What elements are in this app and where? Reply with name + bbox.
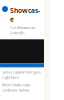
staticText: Certificates on LinkedIn [10, 25, 35, 35]
staticText: Showcase [10, 6, 40, 24]
staticText: More body copy continues below [2, 82, 30, 93]
staticText: Some caption text goes right here [2, 69, 41, 80]
